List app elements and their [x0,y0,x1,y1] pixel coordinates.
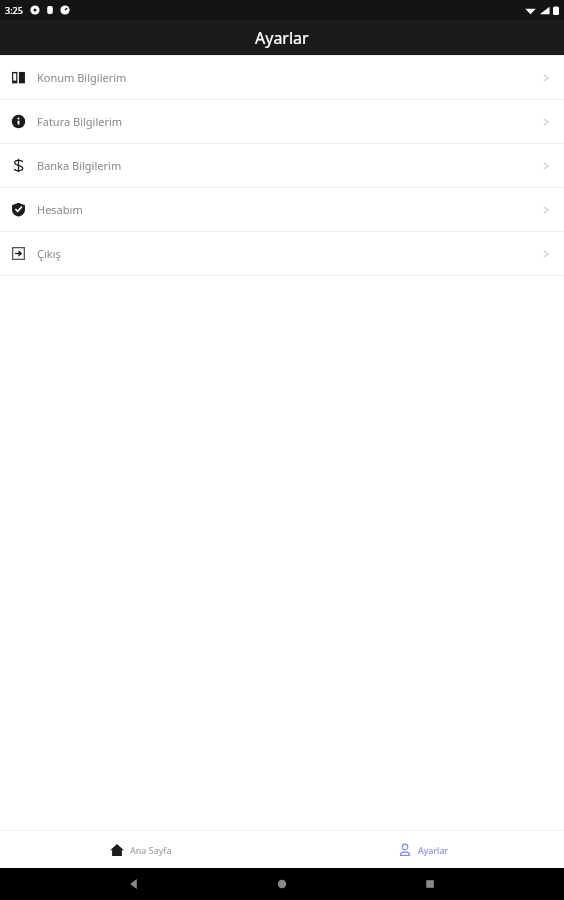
staticText: Konum Bilgilerim [37,70,127,85]
staticText: 3:25 [5,4,23,16]
button[interactable]: Banka Bilgilerim [0,144,564,187]
button[interactable]: Hesabım [0,188,564,231]
button[interactable]: Çıkış [0,232,564,275]
button[interactable]: Home [268,870,296,898]
staticText: Hesabım [37,202,83,217]
button[interactable]: Konum Bilgilerim [0,56,564,99]
button[interactable]: Ana Sayfa [0,831,282,868]
staticText: Çıkış [37,246,61,261]
button[interactable]: Recent apps [416,870,444,898]
staticText: Banka Bilgilerim [37,158,122,173]
button[interactable]: Back [120,870,148,898]
button[interactable]: Ayarlar [282,831,564,868]
staticText: Ayarlar [418,844,449,856]
staticText: Ana Sayfa [130,844,172,856]
staticText: Ayarlar [255,27,309,49]
button[interactable]: Fatura Bilgilerim [0,100,564,143]
staticText: Fatura Bilgilerim [37,114,123,129]
